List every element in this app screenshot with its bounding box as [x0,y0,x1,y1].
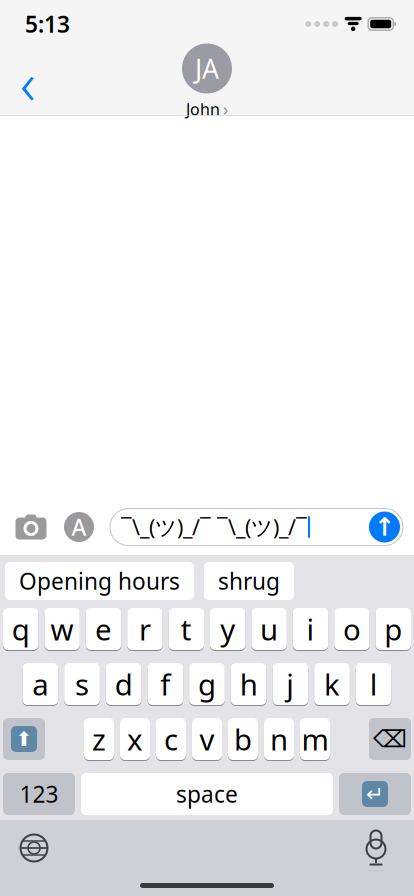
staticText: v [199,719,214,758]
staticText: f [160,664,170,703]
button[interactable]: s [64,662,100,706]
staticText: ↑ [374,513,395,541]
staticText: h [240,664,258,703]
staticText: b [234,719,252,758]
button[interactable]: Back [6,60,50,104]
button[interactable]: k [314,662,350,706]
staticText: e [95,609,112,648]
button[interactable]: i [293,607,328,651]
staticText: d [115,664,133,703]
button[interactable]: t [169,607,204,651]
staticText: m [301,719,328,758]
staticText: ⌫ [373,725,407,753]
button[interactable]: Return [339,772,411,816]
button[interactable]: a [22,662,58,706]
staticText: g [198,664,216,703]
staticText: › [223,97,228,120]
button[interactable]: Send [369,511,400,542]
button[interactable]: Dictate [354,826,398,870]
staticText: Opening hours [19,566,180,596]
button[interactable]: x [120,717,150,761]
staticText: John [186,98,220,120]
staticText: j [286,664,294,703]
button[interactable]: n [264,717,294,761]
button[interactable]: q [3,607,38,651]
button[interactable]: r [127,607,163,651]
button[interactable]: Opening hours [5,562,194,600]
staticText: ⬆ [15,728,32,750]
button[interactable]: u [251,607,287,651]
button[interactable]: b [228,717,258,761]
staticText: p [384,609,402,648]
button[interactable]: j [272,662,308,706]
staticText: space [176,779,238,809]
staticText: ¯\_(ツ)_/¯ ¯\_(ツ)_/¯ [121,513,307,541]
staticText: ‹ [20,43,36,121]
button[interactable]: Next keyboard [12,826,56,870]
button[interactable]: y [210,607,245,651]
button[interactable]: Apps [62,510,96,544]
staticText: JA [195,51,219,86]
staticText: ↵ [366,782,384,806]
staticText: u [260,609,278,648]
button[interactable]: h [231,662,266,706]
staticText: r [139,609,151,648]
staticText: c [164,719,178,758]
staticText: x [127,719,143,758]
staticText: s [75,664,89,703]
button[interactable]: p [376,607,411,651]
staticText: i [306,609,314,648]
staticText: k [324,664,340,703]
staticText: w [51,609,74,648]
button[interactable]: o [334,607,370,651]
button[interactable]: z [84,717,114,761]
staticText: 123 [19,779,58,809]
staticText: o [343,609,361,648]
staticText: a [32,664,48,703]
staticText: t [181,609,192,648]
button[interactable]: w [44,607,80,651]
button[interactable]: shrug [204,562,294,600]
button[interactable]: Shift [3,717,45,761]
button[interactable]: Delete [369,717,411,761]
staticText: shrug [218,566,280,596]
button[interactable]: JA [182,43,232,120]
button[interactable]: f [147,662,183,706]
button[interactable]: c [156,717,186,761]
button[interactable]: v [192,717,222,761]
button[interactable]: d [106,662,141,706]
button[interactable]: 123 [3,772,75,816]
staticText: 5:13 [25,9,70,39]
button[interactable]: Camera [14,510,48,544]
button[interactable]: e [86,607,121,651]
staticText: y [220,609,235,648]
button[interactable]: m [300,717,330,761]
staticText: z [92,719,106,758]
staticText: q [12,609,30,648]
staticText: A [71,512,86,542]
staticText: l [370,664,378,703]
button[interactable]: l [356,662,391,706]
button[interactable]: space [81,772,333,816]
button[interactable]: g [189,662,225,706]
staticText: n [270,719,288,758]
